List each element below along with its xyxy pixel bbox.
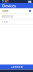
staticText: Name: [2, 9, 9, 13]
staticText: ▮▮▮: [28, 0, 31, 3]
staticText: 9:41: [2, 0, 9, 3]
staticText: Devices: [2, 3, 16, 8]
staticText: Address: [2, 15, 13, 18]
staticText: Connect: [10, 65, 22, 69]
staticText: Port: [2, 20, 8, 23]
